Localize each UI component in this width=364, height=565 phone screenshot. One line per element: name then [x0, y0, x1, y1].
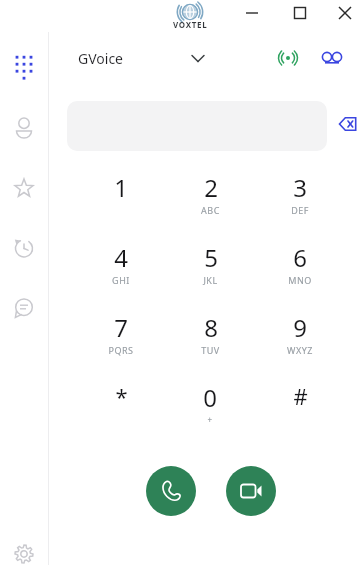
button[interactable]: Dialpad [8, 50, 40, 82]
button[interactable]: Settings [8, 538, 40, 565]
staticText: VOXTEL [173, 19, 208, 30]
staticText: PQRS [108, 344, 134, 356]
button[interactable]: Video call [226, 466, 276, 516]
button[interactable]: 5 [177, 241, 243, 297]
button[interactable]: 2 [177, 171, 243, 227]
staticText: 7 [114, 311, 128, 344]
button[interactable]: Call [146, 466, 196, 516]
button[interactable]: Voicemail [317, 43, 347, 73]
button[interactable]: 1 [88, 171, 154, 227]
button[interactable]: Messages [8, 292, 40, 324]
staticText: 9 [293, 311, 307, 344]
button[interactable]: # [267, 381, 333, 437]
button[interactable]: 9 [267, 311, 333, 367]
button[interactable]: Favorites [8, 172, 40, 204]
button[interactable]: GVoice [70, 44, 185, 72]
staticText: 3 [293, 171, 307, 204]
button[interactable]: 6 [267, 241, 333, 297]
staticText: 6 [293, 241, 307, 274]
button[interactable]: * [88, 381, 154, 437]
button[interactable]: Contacts [8, 112, 40, 144]
button[interactable]: 8 [177, 311, 243, 367]
staticText: 4 [114, 241, 128, 274]
button[interactable]: Expand account [184, 44, 212, 72]
button[interactable]: Backspace [333, 108, 363, 138]
staticText: TUV [201, 344, 220, 356]
staticText: MNO [288, 274, 312, 286]
staticText: 2 [204, 171, 218, 204]
staticText: + [207, 414, 213, 425]
button[interactable]: Maximize [282, 0, 318, 26]
staticText: 1 [114, 171, 128, 204]
button[interactable]: 3 [267, 171, 333, 227]
staticText: WXYZ [287, 344, 313, 356]
button[interactable]: Recents [8, 232, 40, 264]
staticText: GHI [112, 274, 130, 286]
button[interactable]: Close [327, 0, 363, 26]
staticText: DEF [291, 204, 309, 216]
staticText: GVoice [78, 49, 124, 68]
staticText: JKL [203, 274, 218, 286]
staticText: 5 [204, 241, 218, 274]
staticText: # [293, 381, 308, 411]
button[interactable]: Minimize [234, 0, 270, 26]
button[interactable]: 0 [177, 381, 243, 437]
button[interactable]: 7 [88, 311, 154, 367]
staticText: 8 [204, 311, 218, 344]
button[interactable]: Wi-Fi calling [273, 43, 303, 73]
staticText: ABC [201, 204, 220, 216]
staticText: * [115, 381, 128, 411]
staticText: 0 [203, 381, 217, 414]
button[interactable]: 4 [88, 241, 154, 297]
